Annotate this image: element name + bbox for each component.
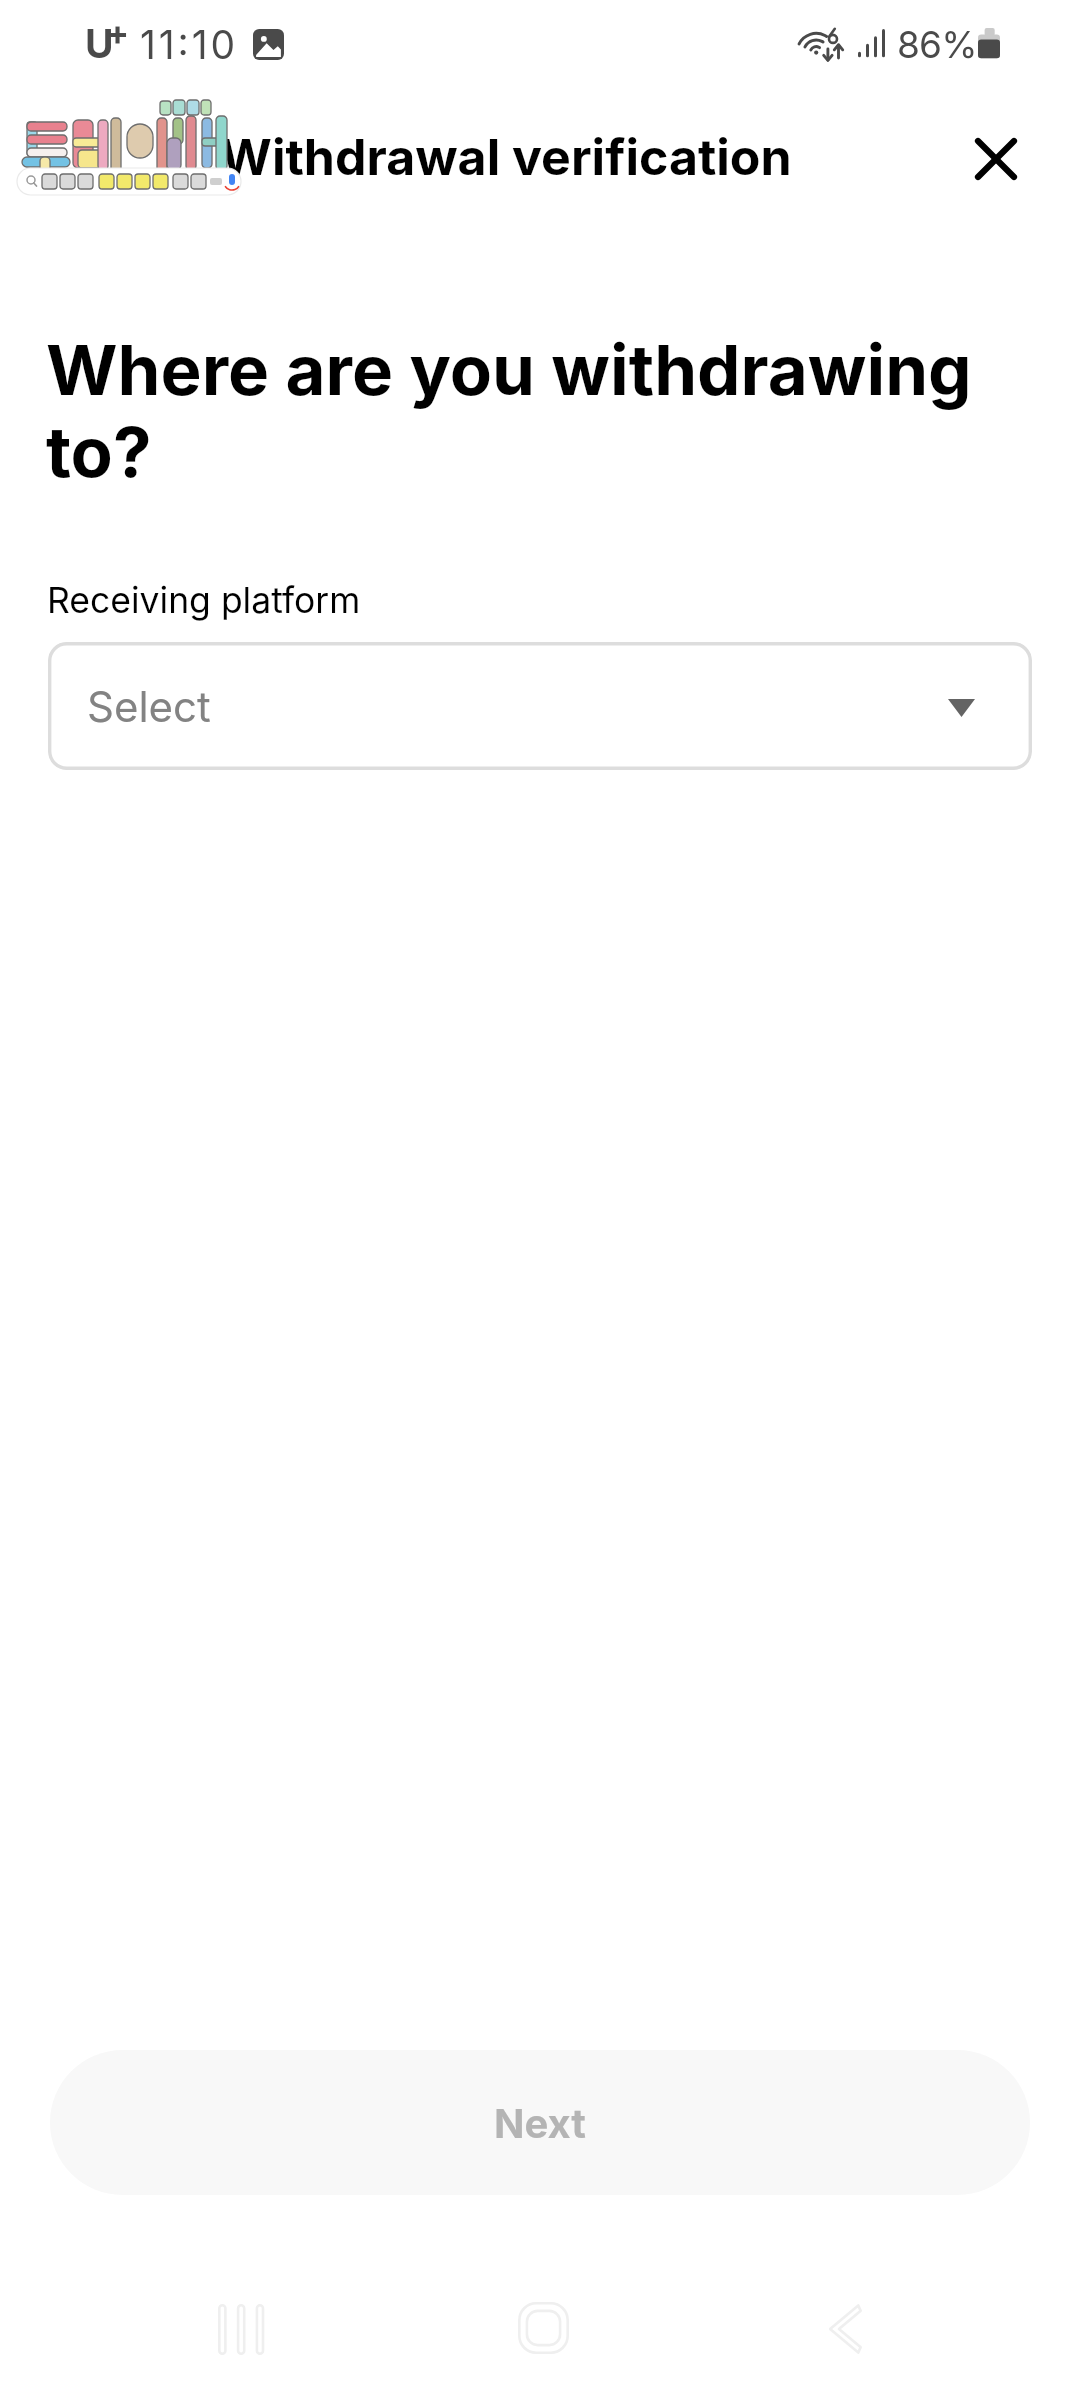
- button[interactable]: Recents: [181, 2281, 301, 2377]
- staticText: +: [106, 12, 130, 53]
- staticText: Where are you withdrawing to?: [46, 328, 981, 494]
- staticText: U: [85, 20, 114, 67]
- button[interactable]: Close: [944, 107, 1048, 211]
- staticText: Withdrawal verification: [220, 127, 792, 187]
- button[interactable]: Select: [48, 642, 1032, 770]
- staticText: 86%: [897, 22, 977, 67]
- staticText: 11:10: [140, 21, 238, 68]
- staticText: Receiving platform: [47, 579, 361, 622]
- button[interactable]: Next: [50, 2050, 1030, 2195]
- staticText: Next: [494, 2099, 586, 2147]
- button[interactable]: Home: [483, 2280, 603, 2376]
- staticText: Select: [87, 681, 211, 732]
